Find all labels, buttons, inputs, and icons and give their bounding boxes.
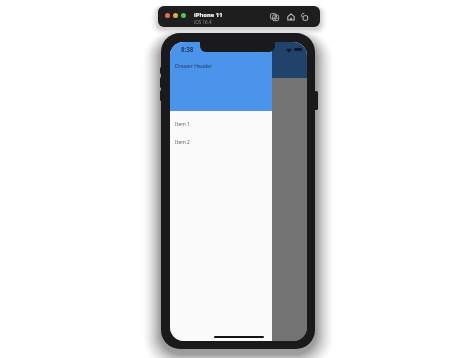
button[interactable]: Item 1 bbox=[170, 115, 272, 133]
button[interactable]: Window control bbox=[165, 13, 170, 18]
staticText: Drawer Header bbox=[175, 62, 213, 69]
button[interactable]: Home bbox=[284, 10, 297, 23]
staticText: Item 2 bbox=[175, 139, 190, 146]
button[interactable]: Window control bbox=[173, 13, 178, 18]
button[interactable]: Close drawer bbox=[170, 42, 307, 341]
staticText: Item 1 bbox=[175, 121, 190, 128]
staticText: iPhone 11 bbox=[194, 11, 223, 19]
button[interactable]: Rotate device bbox=[298, 10, 311, 23]
staticText: iOS 16.4 bbox=[194, 19, 212, 25]
staticText: 8:38 bbox=[181, 45, 194, 53]
button[interactable]: Item 2 bbox=[170, 133, 272, 151]
button[interactable]: Screenshot bbox=[268, 10, 281, 23]
button[interactable]: Window control bbox=[181, 13, 186, 18]
